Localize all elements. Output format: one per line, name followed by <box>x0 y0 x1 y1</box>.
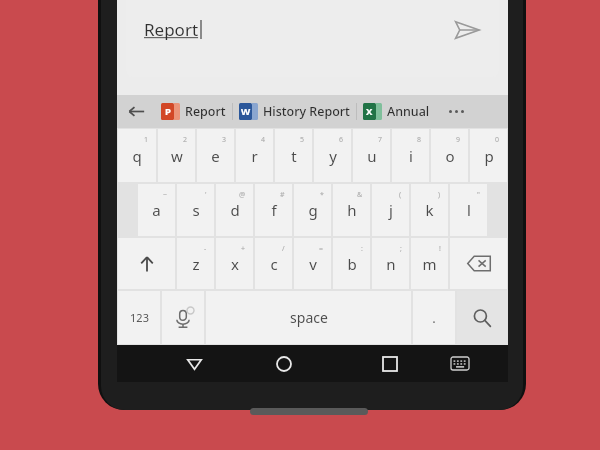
button[interactable]: s <box>177 184 214 236</box>
staticText: ~ <box>163 190 168 200</box>
button[interactable]: P <box>161 95 226 128</box>
staticText: n <box>386 254 396 274</box>
staticText: Annual <box>387 103 433 120</box>
staticText: z <box>192 254 200 274</box>
staticText: a <box>152 200 161 220</box>
staticText: s <box>192 200 200 220</box>
staticText: q <box>132 146 142 166</box>
staticText: 3 <box>222 135 227 145</box>
staticText: m <box>422 254 437 274</box>
button[interactable]: Search <box>457 291 507 344</box>
button[interactable]: More suggestions <box>439 95 473 128</box>
button[interactable]: v <box>294 238 331 289</box>
staticText: + <box>241 244 246 254</box>
staticText: . <box>432 309 436 327</box>
staticText: e <box>211 146 220 166</box>
button[interactable]: g <box>294 184 331 236</box>
button[interactable]: l <box>450 184 487 236</box>
staticText: = <box>319 244 324 254</box>
button[interactable]: f <box>255 184 292 236</box>
button[interactable]: q <box>118 129 156 182</box>
staticText: & <box>357 190 363 200</box>
staticText: History Report <box>263 103 350 120</box>
staticText: d <box>230 200 240 220</box>
button[interactable]: space <box>206 291 411 344</box>
staticText: space <box>290 308 328 327</box>
button[interactable]: . <box>413 291 455 344</box>
button[interactable]: h <box>333 184 370 236</box>
staticText: ) <box>438 190 441 200</box>
staticText: r <box>251 146 258 166</box>
button[interactable]: e <box>197 129 234 182</box>
staticText: w <box>171 146 183 166</box>
button[interactable]: 123 <box>118 291 160 344</box>
button[interactable]: Shift <box>118 238 175 289</box>
button[interactable]: c <box>255 238 292 289</box>
button[interactable]: u <box>353 129 390 182</box>
button[interactable]: k <box>411 184 448 236</box>
staticText: ! <box>439 244 441 254</box>
button[interactable]: X <box>363 95 433 128</box>
button[interactable]: Voice input <box>162 291 204 344</box>
staticText: g <box>308 200 318 220</box>
staticText: 1 <box>144 135 149 145</box>
button[interactable]: x <box>216 238 253 289</box>
staticText: " <box>477 190 480 200</box>
staticText: @ <box>239 190 246 200</box>
staticText: o <box>445 146 455 166</box>
staticText: c <box>270 254 278 274</box>
staticText: ' <box>205 190 207 200</box>
staticText: 5 <box>300 135 305 145</box>
staticText: 2 <box>183 135 188 145</box>
staticText: b <box>347 254 357 274</box>
staticText: l <box>467 200 471 220</box>
staticText: * <box>320 190 324 200</box>
button[interactable]: b <box>333 238 370 289</box>
button[interactable]: j <box>372 184 409 236</box>
staticText: / <box>282 244 285 254</box>
button[interactable]: Send <box>449 12 485 48</box>
button[interactable]: Home <box>256 345 312 382</box>
staticText: ; <box>400 244 402 254</box>
staticText: : <box>361 244 363 254</box>
button[interactable]: m <box>411 238 448 289</box>
button[interactable]: Switch keyboard <box>432 345 488 382</box>
button[interactable]: Recents <box>362 345 418 382</box>
staticText: u <box>367 146 377 166</box>
button[interactable]: i <box>392 129 429 182</box>
staticText: 7 <box>378 135 383 145</box>
staticText: Report <box>185 103 226 120</box>
staticText: y <box>329 146 337 166</box>
staticText: ( <box>399 190 402 200</box>
staticText: 4 <box>261 135 266 145</box>
button[interactable]: z <box>177 238 214 289</box>
button[interactable]: Backspace <box>450 238 507 289</box>
button[interactable]: Report <box>126 0 499 77</box>
staticText: x <box>231 254 239 274</box>
button[interactable]: d <box>216 184 253 236</box>
button[interactable]: t <box>275 129 312 182</box>
staticText: v <box>309 254 317 274</box>
button[interactable]: W <box>239 95 350 128</box>
button[interactable]: r <box>236 129 273 182</box>
staticText: j <box>389 200 393 220</box>
staticText: 8 <box>417 135 422 145</box>
button[interactable]: y <box>314 129 351 182</box>
staticText: X <box>366 105 373 118</box>
staticText: h <box>347 200 357 220</box>
button[interactable]: a <box>138 184 175 236</box>
button[interactable]: n <box>372 238 409 289</box>
staticText: - <box>204 244 207 254</box>
button[interactable]: o <box>431 129 468 182</box>
button[interactable]: Back <box>117 95 155 128</box>
staticText: k <box>425 200 434 220</box>
button[interactable]: Back <box>166 345 222 382</box>
staticText: 0 <box>495 135 500 145</box>
staticText: i <box>409 146 413 166</box>
staticText: W <box>241 105 251 118</box>
staticText: P <box>165 105 171 118</box>
button[interactable]: w <box>158 129 195 182</box>
button[interactable]: p <box>470 129 507 182</box>
staticText: f <box>271 200 277 220</box>
staticText: Report <box>144 18 199 41</box>
